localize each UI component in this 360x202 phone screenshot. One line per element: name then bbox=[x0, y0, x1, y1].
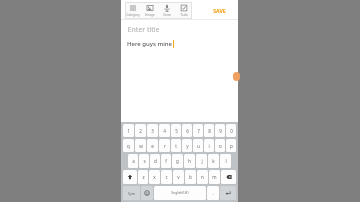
staticText: v bbox=[177, 174, 180, 180]
staticText: Here guys mine bbox=[127, 40, 172, 48]
button[interactable]: b bbox=[185, 170, 196, 184]
staticText: 3 bbox=[151, 128, 154, 134]
staticText: Enter title bbox=[127, 25, 160, 35]
staticText: 4 bbox=[163, 128, 166, 134]
staticText: 0 bbox=[230, 128, 233, 134]
button[interactable]: Enter bbox=[220, 186, 236, 200]
button[interactable]: d bbox=[150, 154, 160, 168]
button[interactable]: h bbox=[184, 154, 195, 168]
staticText: l bbox=[225, 158, 227, 164]
button[interactable]: 2 bbox=[135, 124, 146, 137]
staticText: r bbox=[164, 143, 166, 149]
button[interactable]: 8 bbox=[204, 124, 214, 137]
staticText: . bbox=[212, 190, 214, 196]
button[interactable]: Todo bbox=[175, 2, 192, 19]
staticText: w bbox=[139, 143, 143, 149]
button[interactable]: . bbox=[207, 186, 219, 200]
staticText: q bbox=[127, 143, 130, 149]
staticText: Image bbox=[145, 13, 155, 17]
button[interactable]: y bbox=[182, 139, 192, 152]
staticText: Todo bbox=[180, 13, 188, 17]
button[interactable]: r bbox=[159, 139, 170, 152]
staticText: 1 bbox=[127, 128, 130, 134]
staticText: a bbox=[132, 158, 135, 164]
staticText: z bbox=[142, 174, 145, 180]
staticText: 8 bbox=[208, 128, 211, 134]
button[interactable]: c bbox=[161, 170, 172, 184]
staticText: y bbox=[186, 143, 189, 149]
staticText: g bbox=[176, 158, 179, 164]
button[interactable]: 7 bbox=[193, 124, 203, 137]
button[interactable]: 9 bbox=[215, 124, 225, 137]
button[interactable]: Category bbox=[125, 2, 141, 19]
staticText: o bbox=[219, 143, 222, 149]
staticText: 6 bbox=[186, 128, 189, 134]
button[interactable]: Voice bbox=[158, 2, 175, 19]
staticText: x bbox=[153, 174, 156, 180]
button[interactable]: j bbox=[196, 154, 207, 168]
button[interactable]: SAVE bbox=[210, 4, 229, 17]
button[interactable]: Enter title bbox=[127, 25, 232, 35]
button[interactable]: 3 bbox=[147, 124, 158, 137]
staticText: e bbox=[151, 143, 154, 149]
button[interactable]: u bbox=[193, 139, 203, 152]
staticText: p bbox=[230, 143, 233, 149]
button[interactable]: Sym bbox=[123, 186, 140, 200]
button[interactable]: 6 bbox=[182, 124, 192, 137]
staticText: m bbox=[212, 174, 217, 180]
button[interactable]: a bbox=[128, 154, 138, 168]
staticText: b bbox=[189, 174, 192, 180]
button[interactable]: n bbox=[197, 170, 208, 184]
staticText: SAVE bbox=[213, 7, 226, 14]
button[interactable]: s bbox=[139, 154, 149, 168]
button[interactable]: z bbox=[138, 170, 148, 184]
staticText: u bbox=[197, 143, 200, 149]
button[interactable]: 4 bbox=[159, 124, 170, 137]
button[interactable]: v bbox=[173, 170, 184, 184]
button[interactable]: t bbox=[171, 139, 181, 152]
staticText: i bbox=[208, 143, 210, 149]
button[interactable]: Image bbox=[141, 2, 158, 19]
staticText: Category bbox=[126, 13, 140, 17]
staticText: Sym bbox=[128, 191, 135, 196]
button[interactable]: o bbox=[215, 139, 225, 152]
button[interactable]: x bbox=[149, 170, 160, 184]
staticText: s bbox=[143, 158, 146, 164]
button[interactable]: Emoji bbox=[141, 186, 153, 200]
staticText: h bbox=[188, 158, 191, 164]
button[interactable]: Backspace bbox=[221, 170, 236, 184]
staticText: Voice bbox=[163, 13, 171, 17]
button[interactable]: English(UK) bbox=[154, 186, 206, 200]
staticText: n bbox=[201, 174, 204, 180]
button[interactable]: m bbox=[209, 170, 220, 184]
staticText: 5 bbox=[175, 128, 178, 134]
staticText: 2 bbox=[139, 128, 142, 134]
button[interactable]: f bbox=[161, 154, 171, 168]
staticText: 7 bbox=[197, 128, 200, 134]
staticText: f bbox=[165, 158, 167, 164]
staticText: j bbox=[201, 158, 203, 164]
button[interactable]: q bbox=[123, 139, 134, 152]
button[interactable]: e bbox=[147, 139, 158, 152]
button[interactable]: 1 bbox=[123, 124, 134, 137]
staticText: d bbox=[154, 158, 157, 164]
staticText: English(UK) bbox=[171, 191, 189, 195]
button[interactable]: l bbox=[220, 154, 231, 168]
button[interactable]: w bbox=[135, 139, 146, 152]
button[interactable]: Here guys mine bbox=[127, 40, 232, 48]
button[interactable]: p bbox=[226, 139, 236, 152]
staticText: 9 bbox=[219, 128, 222, 134]
button[interactable]: Shift bbox=[123, 170, 137, 184]
staticText: k bbox=[212, 158, 215, 164]
button[interactable]: 0 bbox=[226, 124, 236, 137]
button[interactable]: k bbox=[208, 154, 219, 168]
button[interactable]: g bbox=[172, 154, 183, 168]
staticText: t bbox=[175, 143, 177, 149]
staticText: c bbox=[165, 174, 168, 180]
button[interactable]: 5 bbox=[171, 124, 181, 137]
button[interactable]: i bbox=[204, 139, 214, 152]
